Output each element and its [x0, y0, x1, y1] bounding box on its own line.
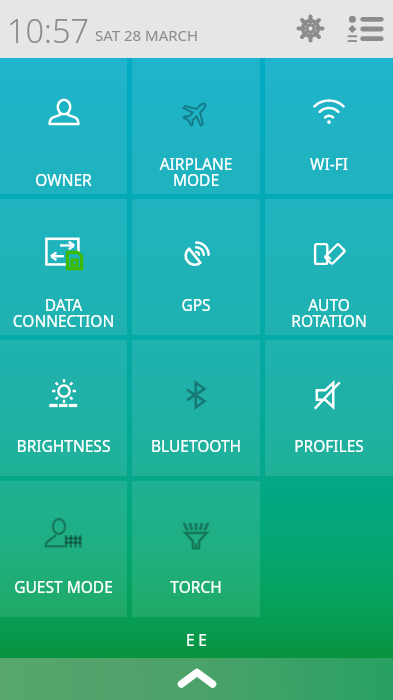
- button[interactable]: GUEST MODE: [0, 481, 127, 617]
- button[interactable]: AIRPLANE MODE: [132, 58, 260, 194]
- staticText: BRIGHTNESS: [0, 435, 127, 456]
- staticText: EE: [186, 629, 211, 650]
- staticText: TORCH: [132, 576, 260, 597]
- button[interactable]: Quick settings list: [338, 0, 390, 58]
- staticText: PROFILES: [265, 435, 393, 456]
- button[interactable]: AUTO ROTATION: [265, 199, 393, 335]
- staticText: SAT 28 MARCH: [95, 25, 199, 45]
- staticText: BLUETOOTH: [132, 435, 260, 456]
- button[interactable]: Settings: [288, 0, 338, 58]
- button[interactable]: BRIGHTNESS: [0, 340, 127, 476]
- button[interactable]: TORCH: [132, 481, 260, 617]
- button[interactable]: EE: [0, 617, 393, 658]
- staticText: GPS: [132, 294, 260, 315]
- staticText: WI-FI: [265, 153, 393, 174]
- staticText: 10:57: [7, 8, 90, 52]
- staticText: GUEST MODE: [0, 576, 127, 597]
- button[interactable]: PROFILES: [265, 340, 393, 476]
- button[interactable]: BLUETOOTH: [132, 340, 260, 476]
- button[interactable]: WI-FI: [265, 58, 393, 194]
- staticText: OWNER: [0, 153, 127, 190]
- button[interactable]: GPS: [132, 199, 260, 335]
- button[interactable]: DATA CONNECTION: [0, 199, 127, 335]
- staticText: AIRPLANE MODE: [132, 153, 260, 190]
- button[interactable]: OWNER: [0, 58, 127, 194]
- staticText: AUTO ROTATION: [265, 294, 393, 331]
- button[interactable]: Collapse panel: [0, 658, 393, 700]
- staticText: DATA CONNECTION: [0, 294, 127, 331]
